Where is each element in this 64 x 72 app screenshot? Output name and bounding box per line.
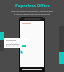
staticText: Paperless Office (15, 3, 50, 9)
button[interactable]: Confirm signature (4, 38, 28, 48)
button[interactable]: Confirm signature (22, 45, 26, 47)
other: Pointer (20, 50, 24, 54)
staticText: a secure digital signature workflow (14, 13, 50, 16)
staticText: Sign documents anywhere, anytime with (11, 10, 53, 13)
